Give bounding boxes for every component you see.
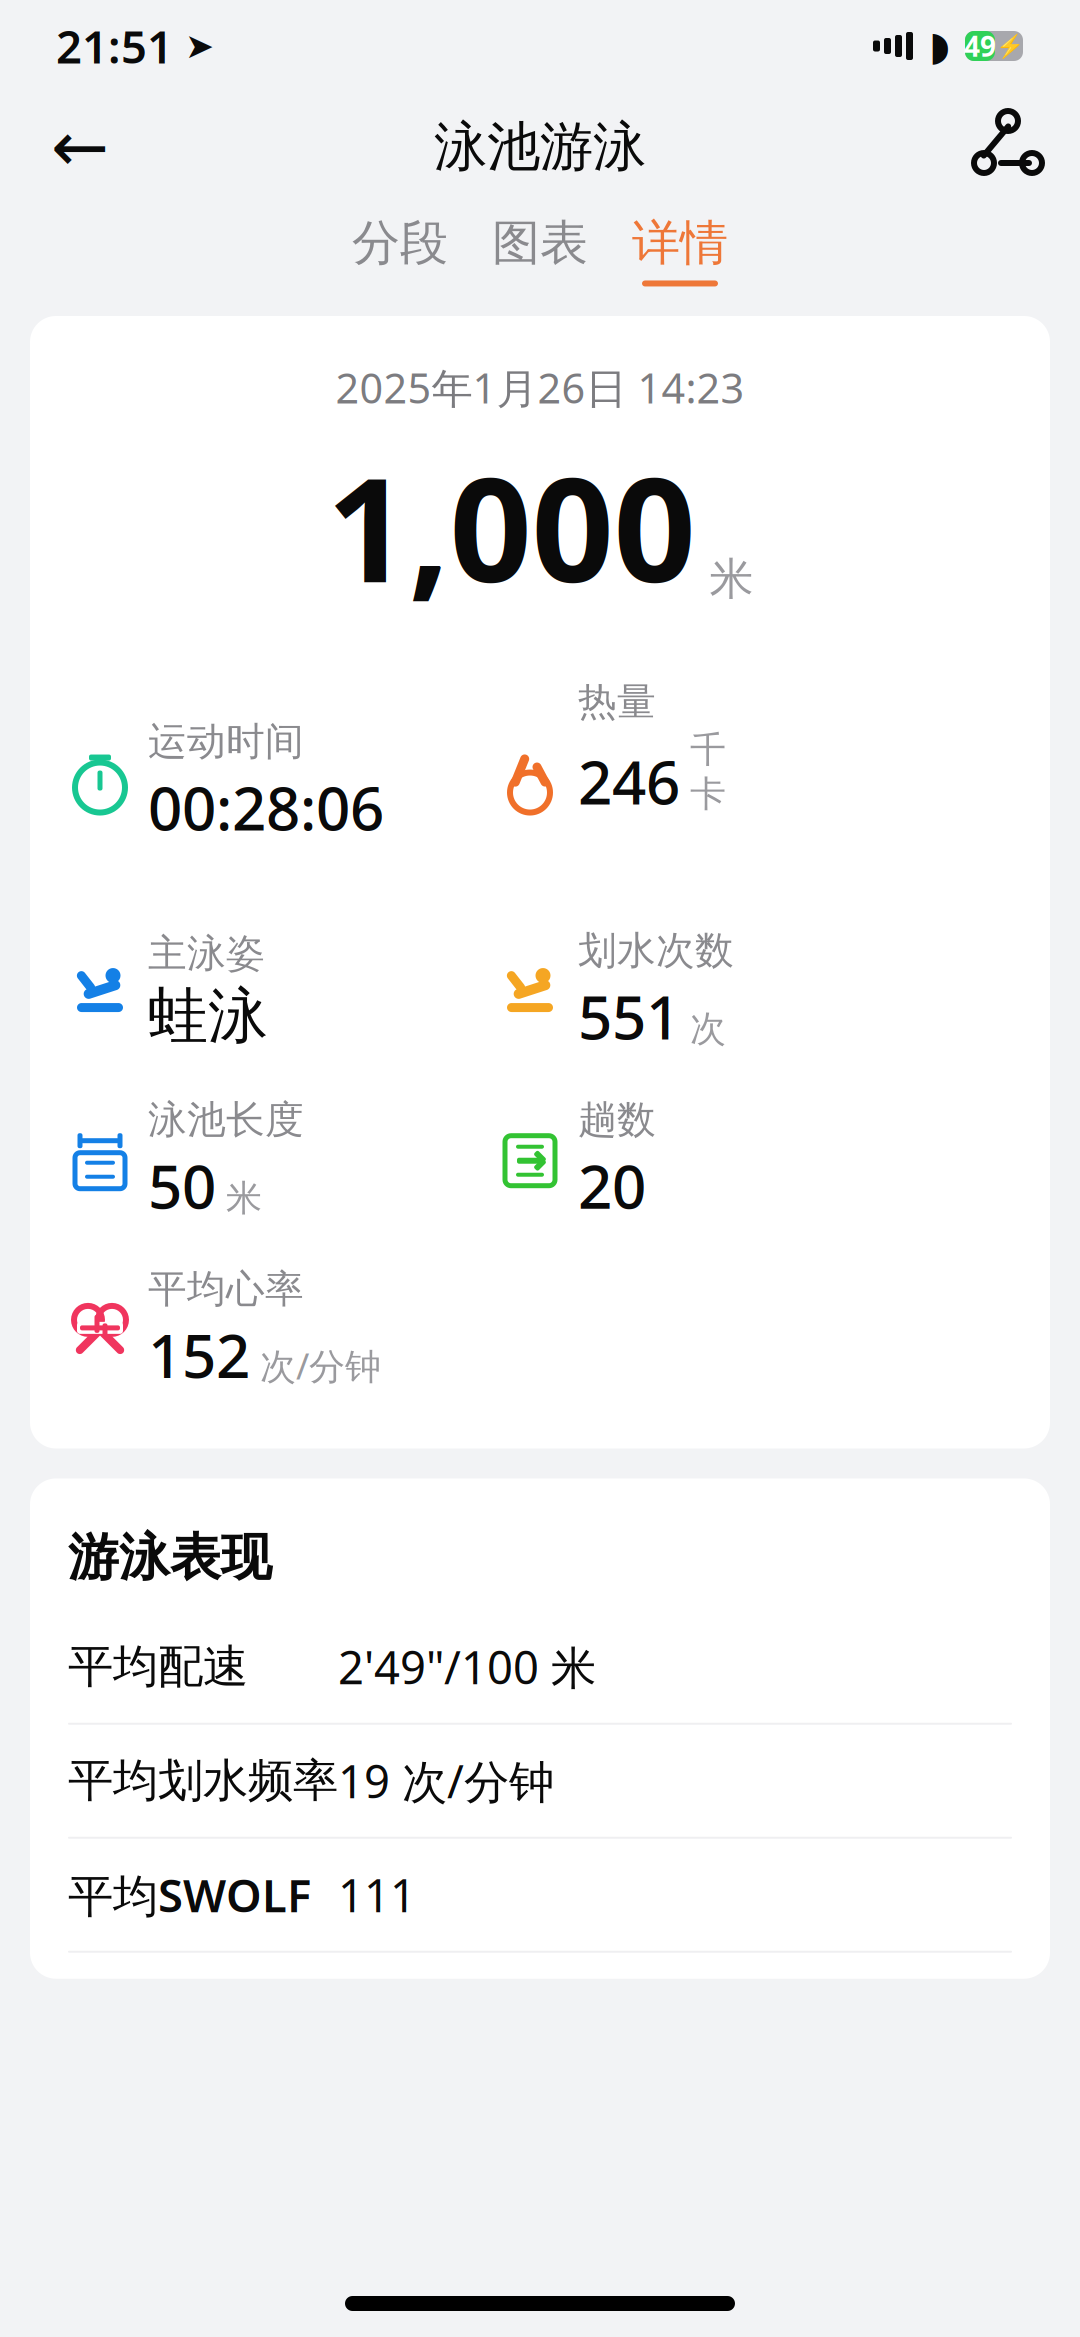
staticText: 111 [338, 1865, 416, 1925]
staticText: 米 [709, 552, 753, 606]
button[interactable]: 详情 [610, 213, 750, 294]
staticText: 152 [148, 1315, 250, 1394]
staticText: 20 [578, 1146, 646, 1225]
staticText: 热量 [578, 678, 656, 726]
staticText: ➤ [173, 26, 214, 66]
button[interactable]: 分享 [952, 99, 1048, 195]
staticText: ⚡ [996, 33, 1024, 59]
staticText: 蛙泳 [148, 979, 268, 1053]
staticText: 运动时间 [148, 718, 304, 765]
staticText: 详情 [632, 213, 728, 272]
button[interactable]: 分段 [330, 213, 470, 294]
staticText: 游泳表现 [68, 1526, 272, 1589]
staticText: 551 [578, 976, 680, 1056]
staticText: 246 [578, 741, 680, 821]
staticText: 平均SWOLF [68, 1865, 311, 1925]
staticText: 平均配速 [68, 1639, 248, 1695]
staticText: 21:51 [56, 16, 173, 76]
staticText: 泳池长度 [148, 1096, 304, 1144]
staticText: ◗ [929, 23, 950, 69]
staticText: 00:28:06 [148, 767, 384, 847]
staticText: 泳池游泳 [434, 114, 646, 180]
staticText: 划水次数 [578, 927, 734, 974]
staticText: 分段 [352, 213, 448, 272]
staticText: 平均心率 [148, 1265, 304, 1313]
staticText: 2025年1月26日 14:23 [335, 360, 744, 415]
staticText: 趟数 [578, 1096, 656, 1144]
staticText: 主泳姿 [148, 930, 265, 977]
staticText: 50 [148, 1146, 216, 1225]
staticText: ← [51, 108, 109, 186]
staticText: 2'49"/100 米 [338, 1637, 596, 1697]
staticText: 图表 [492, 213, 588, 272]
staticText: 次/分钟 [260, 1342, 381, 1389]
staticText: 49 [964, 27, 996, 65]
button[interactable]: 图表 [470, 213, 610, 294]
staticText: 1,000 [326, 431, 695, 622]
staticText: 次 [690, 1007, 726, 1051]
staticText: 千卡 [690, 728, 726, 816]
button[interactable]: 返回 [32, 99, 128, 195]
staticText: 19 次/分钟 [338, 1751, 554, 1811]
staticText: 米 [226, 1176, 262, 1220]
staticText: 平均划水频率 [68, 1753, 338, 1809]
